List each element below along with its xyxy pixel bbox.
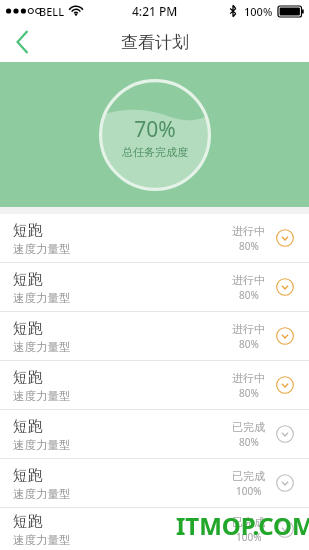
staticText: 短跑 bbox=[13, 270, 43, 289]
staticText: 进行中 bbox=[232, 322, 265, 336]
staticText: 70% bbox=[134, 115, 176, 144]
staticText: 速度力量型 bbox=[13, 389, 71, 403]
staticText: 短跑 bbox=[13, 512, 43, 531]
staticText: 进行中 bbox=[232, 273, 265, 287]
button[interactable]: Back bbox=[0, 22, 44, 62]
staticText: 100% bbox=[236, 484, 262, 498]
staticText: 80% bbox=[239, 435, 259, 449]
staticText: 速度力量型 bbox=[13, 438, 71, 452]
staticText: 80% bbox=[239, 288, 259, 302]
staticText: 80% bbox=[239, 337, 259, 351]
staticText: 80% bbox=[239, 239, 259, 253]
button[interactable]: 短跑 bbox=[0, 410, 309, 458]
button[interactable]: 短跑 bbox=[0, 361, 309, 409]
staticText: 已完成 bbox=[232, 469, 265, 483]
staticText: 短跑 bbox=[13, 368, 43, 387]
button[interactable]: Expand bbox=[274, 472, 296, 494]
staticText: 总任务完成度 bbox=[122, 145, 188, 159]
staticText: 速度力量型 bbox=[13, 487, 71, 501]
staticText: 4:21 PM bbox=[132, 3, 178, 19]
button[interactable]: Expand bbox=[274, 227, 296, 249]
staticText: ITMOP.COM bbox=[176, 509, 309, 542]
staticText: 进行中 bbox=[232, 371, 265, 385]
staticText: 查看计划 bbox=[121, 32, 189, 53]
button[interactable]: Expand bbox=[274, 325, 296, 347]
button[interactable]: Expand bbox=[274, 423, 296, 445]
button[interactable]: Expand bbox=[274, 518, 296, 540]
staticText: 短跑 bbox=[13, 221, 43, 240]
staticText: 100% bbox=[236, 530, 262, 544]
button[interactable]: 短跑 bbox=[0, 508, 309, 550]
button[interactable]: 短跑 bbox=[0, 263, 309, 311]
staticText: 速度力量型 bbox=[13, 340, 71, 354]
staticText: 短跑 bbox=[13, 417, 43, 436]
staticText: BELL bbox=[39, 4, 65, 19]
staticText: 短跑 bbox=[13, 319, 43, 338]
staticText: 80% bbox=[239, 386, 259, 400]
staticText: 速度力量型 bbox=[13, 291, 71, 305]
staticText: 速度力量型 bbox=[13, 242, 71, 256]
staticText: 已完成 bbox=[232, 515, 265, 529]
button[interactable]: Expand bbox=[274, 374, 296, 396]
staticText: 短跑 bbox=[13, 466, 43, 485]
staticText: 100% bbox=[244, 4, 273, 19]
button[interactable]: 短跑 bbox=[0, 459, 309, 507]
staticText: 速度力量型 bbox=[13, 533, 71, 547]
button[interactable]: Expand bbox=[274, 276, 296, 298]
button[interactable]: 短跑 bbox=[0, 312, 309, 360]
staticText: 已完成 bbox=[232, 420, 265, 434]
staticText: 进行中 bbox=[232, 224, 265, 238]
button[interactable]: 短跑 bbox=[0, 214, 309, 262]
